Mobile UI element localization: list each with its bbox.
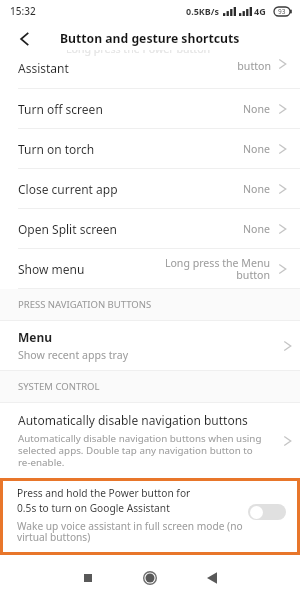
staticText: button	[151, 59, 271, 73]
staticText: 4G	[254, 5, 266, 17]
staticText: 15:32	[10, 4, 36, 18]
staticText: None	[145, 182, 270, 196]
button[interactable]: Show menu	[0, 249, 300, 289]
staticText: 0.5KB/s	[186, 5, 220, 17]
staticText: Press and hold the Power button for 0.5s…	[17, 486, 191, 515]
staticText: Assistant	[18, 60, 69, 76]
staticText: SYSTEM CONTROL	[18, 380, 100, 393]
staticText: Long press the Menu button	[145, 256, 270, 282]
button[interactable]: Turn on torch	[0, 129, 300, 169]
staticText: Close current app	[18, 181, 118, 197]
staticText: PRESS NAVIGATION BUTTONS	[18, 298, 152, 311]
staticText: Show menu	[18, 261, 85, 277]
staticText: Wake up voice assistant in full screen m…	[17, 519, 243, 544]
button[interactable]: Automatically disable navigation buttons	[0, 403, 300, 478]
staticText: Turn off screen	[18, 101, 103, 117]
button[interactable]: Open Split screen	[0, 209, 300, 249]
staticText: Automatically disable navigation buttons…	[18, 432, 262, 469]
button[interactable]: Menu	[0, 321, 300, 371]
button[interactable]: Back	[10, 25, 38, 53]
button[interactable]: Close current app	[0, 169, 300, 209]
staticText: Menu	[18, 329, 53, 345]
staticText: Long press the Power button	[66, 50, 211, 56]
staticText: Turn on torch	[18, 141, 95, 157]
button[interactable]: Toggle Power button assistant	[248, 504, 286, 520]
staticText: Open Split screen	[18, 221, 117, 237]
button[interactable]: Recent apps	[71, 561, 105, 595]
staticText: Show recent apps tray	[18, 348, 129, 362]
staticText: 93	[278, 7, 286, 16]
button[interactable]: Turn off screen	[0, 89, 300, 129]
button[interactable]: Home	[133, 561, 167, 595]
button[interactable]: Back	[195, 561, 229, 595]
staticText: None	[145, 142, 270, 156]
button[interactable]: Long press the Power button	[0, 50, 300, 89]
button[interactable]: Press and hold the Power button for 0.5s…	[0, 478, 300, 555]
staticText: Automatically disable navigation buttons	[18, 412, 248, 428]
staticText: None	[145, 102, 270, 116]
staticText: Button and gesture shortcuts	[60, 30, 240, 47]
staticText: None	[145, 222, 270, 236]
